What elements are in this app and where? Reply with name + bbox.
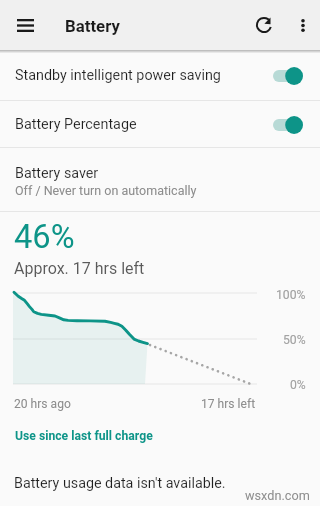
staticText: 17 hrs left [201, 397, 256, 411]
staticText: Battery usage data isn't available. [14, 475, 226, 492]
staticText: Off / Never turn on automatically [15, 183, 197, 198]
staticText: 0% [290, 378, 306, 392]
staticText: wsxdn.com [245, 488, 310, 503]
staticText: 20 hrs ago [14, 397, 71, 411]
staticText: 50% [283, 333, 306, 347]
button[interactable]: Battery saver [0, 148, 320, 211]
staticText: Battery Percentage [15, 116, 137, 133]
staticText: Approx. 17 hrs left [14, 259, 145, 278]
button[interactable]: Navigation menu [0, 0, 50, 50]
staticText: Use since last full charge [15, 429, 153, 443]
staticText: Battery [65, 16, 120, 36]
staticText: 46% [14, 218, 75, 256]
button[interactable]: Standby intelligent power saving [0, 52, 320, 100]
button[interactable]: Refresh [241, 0, 286, 50]
staticText: 100% [276, 288, 306, 302]
staticText: Standby intelligent power saving [15, 67, 221, 84]
staticText: Battery saver [15, 165, 99, 182]
button[interactable]: Use since last full charge [0, 423, 320, 449]
button[interactable]: More options [286, 0, 320, 50]
button[interactable]: Battery Percentage [0, 101, 320, 147]
